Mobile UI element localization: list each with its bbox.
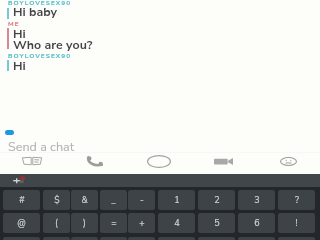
staticText: & (81, 194, 88, 206)
button[interactable]: ! (278, 213, 315, 233)
staticText: Hi (13, 25, 26, 42)
staticText: Hi baby (13, 3, 58, 20)
button[interactable]: ( (43, 213, 70, 233)
button[interactable]: ; (128, 237, 155, 240)
staticText: Who are you? (13, 36, 93, 53)
button[interactable]: 4 (158, 213, 195, 233)
staticText: # (19, 194, 25, 206)
staticText: ( (55, 217, 58, 229)
button[interactable]: : (100, 237, 127, 240)
staticText: + (139, 217, 145, 229)
button[interactable]: _ (100, 190, 127, 210)
button[interactable]: " (43, 237, 70, 240)
button[interactable]: ' (71, 237, 98, 240)
button[interactable]: ? (278, 190, 315, 210)
button[interactable]: Call (65, 151, 125, 171)
button[interactable]: Camera (2, 151, 62, 171)
button[interactable]: 6 (238, 213, 275, 233)
staticText: _ (111, 194, 116, 206)
staticText: Hi (13, 57, 26, 74)
staticText: @ (17, 217, 26, 229)
staticText: 3 (254, 194, 260, 206)
staticText: 6 (254, 217, 260, 229)
button[interactable]: $ (43, 190, 70, 210)
button[interactable]: 8 (198, 237, 235, 240)
staticText: BOYLOVESEX90 (8, 0, 72, 7)
staticText: $ (54, 194, 60, 206)
button[interactable] (0, 52, 320, 71)
staticText: Send a chat (8, 138, 75, 152)
button[interactable]: = (100, 213, 127, 233)
button[interactable]: 5 (198, 213, 235, 233)
button[interactable]: Send snap (129, 151, 189, 171)
staticText: ? (295, 194, 299, 206)
button[interactable]: ) (71, 213, 98, 233)
staticText: 5 (214, 217, 220, 229)
button[interactable] (0, 0, 320, 19)
button[interactable]: Stickers (258, 151, 318, 171)
staticText: - (140, 194, 144, 206)
staticText: ! (295, 217, 298, 229)
staticText: 1 (174, 194, 180, 206)
button[interactable]: 2 (198, 190, 235, 210)
button[interactable]: - (128, 190, 155, 210)
button[interactable] (0, 20, 320, 50)
staticText: = (111, 217, 117, 229)
button[interactable]: Send a chat (0, 137, 320, 151)
button[interactable]: & (71, 190, 98, 210)
staticText: 2 (214, 194, 220, 206)
button[interactable]: + (128, 213, 155, 233)
staticText: 4 (174, 217, 180, 229)
button[interactable]: * (3, 237, 40, 240)
button[interactable]: 7 (158, 237, 195, 240)
button[interactable]: 1 (158, 190, 195, 210)
staticText: BOYLOVESEX90 (8, 51, 72, 60)
button[interactable]: Add sticker (7, 174, 29, 187)
button[interactable]: , (278, 237, 315, 240)
button[interactable]: # (3, 190, 40, 210)
staticText: ME (8, 19, 20, 28)
button[interactable]: @ (3, 213, 40, 233)
button[interactable]: 3 (238, 190, 275, 210)
staticText: ) (83, 217, 86, 229)
button[interactable]: 9 (238, 237, 275, 240)
button[interactable]: Video call (193, 151, 253, 171)
